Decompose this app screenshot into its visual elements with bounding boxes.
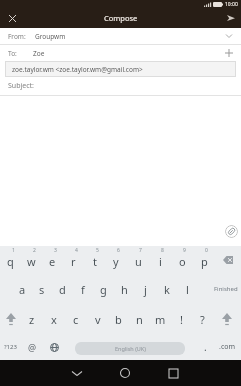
button[interactable]: t [84,246,105,274]
staticText: 0 [205,247,208,254]
staticText: j [144,282,147,297]
button[interactable]: l [177,274,198,304]
button[interactable]: q [0,246,21,274]
button[interactable]: m [150,304,171,334]
button[interactable]: i [149,246,171,274]
button[interactable] [6,12,18,24]
button[interactable]: .com [213,334,241,360]
button[interactable]: @ [21,334,43,360]
staticText: l [186,282,189,297]
button[interactable]: To: [0,45,241,61]
staticText: d [59,282,66,297]
button[interactable]: From: [0,28,241,44]
button[interactable]: Finished [198,274,241,304]
staticText: English (UK) [115,345,146,352]
button[interactable] [158,360,188,386]
staticText: @ [28,341,37,353]
staticText: s [39,282,45,297]
staticText: e [49,254,56,269]
staticText: b [115,312,122,327]
staticText: n [136,312,143,327]
staticText: z [29,312,35,327]
button[interactable]: y [105,246,127,274]
button[interactable] [215,246,241,274]
staticText: c [73,312,79,327]
staticText: p [201,254,208,269]
button[interactable]: ! [171,304,192,334]
button[interactable]: k [156,274,177,304]
button[interactable]: e [42,246,63,274]
staticText: zoe.taylor.wm <zoe.taylor.wm@gmail.com> [12,65,143,74]
staticText: Compose [104,13,138,23]
button[interactable]: English (UK) [75,342,185,355]
staticText: i [159,254,162,269]
button[interactable]: g [93,274,114,304]
button[interactable]: u [127,246,149,274]
staticText: k [164,282,170,297]
button[interactable]: . [197,334,213,360]
button[interactable]: n [129,304,150,334]
button[interactable]: w [21,246,42,274]
staticText: w [27,254,36,269]
staticText: 8 [161,247,164,254]
staticText: . [204,340,207,354]
staticText: 9 [183,247,186,254]
staticText: 4 [75,247,78,254]
button[interactable] [0,304,21,334]
staticText: y [113,254,119,269]
staticText: t [93,254,97,269]
staticText: .com [219,342,236,352]
button[interactable] [62,360,92,386]
button[interactable]: ? [192,304,213,334]
staticText: ?123 [4,343,17,351]
staticText: Groupwm [35,32,66,41]
staticText: v [95,312,101,327]
button[interactable] [213,304,241,334]
staticText: q [7,254,14,269]
staticText: h [121,282,128,297]
staticText: 2 [33,247,36,254]
button[interactable]: j [135,274,156,304]
staticText: 5 [96,247,99,254]
button[interactable]: c [65,304,87,334]
button[interactable]: v [87,304,108,334]
button[interactable]: p [193,246,215,274]
button[interactable]: z [21,304,43,334]
button[interactable]: s [32,274,52,304]
button[interactable]: f [72,274,93,304]
button[interactable]: x [43,304,65,334]
staticText: r [71,254,76,269]
staticText: m [155,312,166,327]
staticText: 6 [117,247,120,254]
staticText: Zoe [33,49,45,58]
staticText: Subject: [8,81,34,91]
button[interactable] [43,334,65,360]
button[interactable]: Subject: [0,77,241,95]
staticText: f [81,282,85,297]
button[interactable]: d [52,274,72,304]
button[interactable] [225,225,238,238]
staticText: o [179,254,186,269]
button[interactable]: h [114,274,135,304]
button[interactable]: a [12,274,32,304]
button[interactable]: o [171,246,193,274]
staticText: 3 [54,247,57,254]
staticText: x [51,312,57,327]
button[interactable] [110,360,140,386]
staticText: To: [8,49,17,58]
staticText: a [19,282,26,297]
button[interactable]: r [63,246,84,274]
button[interactable]: zoe.taylor.wm <zoe.taylor.wm@gmail.com> [5,61,236,77]
button[interactable]: b [108,304,129,334]
staticText: ! [180,312,183,327]
staticText: g [100,282,107,297]
staticText: 1 [12,247,15,254]
button[interactable]: ?123 [0,334,21,360]
staticText: From: [8,32,26,41]
staticText: 7 [139,247,142,254]
staticText: 10:00 [225,1,238,8]
staticText: Finished [214,285,238,293]
button[interactable] [225,12,237,24]
staticText: u [135,254,142,269]
staticText: ? [200,312,205,327]
